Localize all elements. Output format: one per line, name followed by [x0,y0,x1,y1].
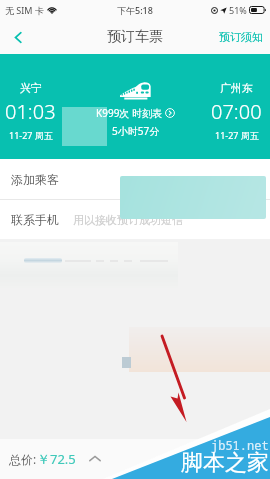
button[interactable]: 联系手机 [0,200,270,239]
button[interactable]: K999次 时刻表 [96,106,175,120]
staticText: 11-27 周五 [9,129,53,141]
button[interactable]: 添加乘客 [0,159,270,199]
staticText: jb51.net [211,437,269,453]
staticText: ￥72.5 [37,450,76,468]
staticText: 兴宁 [20,81,42,95]
staticText: 5小时57分 [112,124,160,138]
staticText: 无 SIM 卡 [5,4,44,16]
staticText: 预订须知 [219,30,263,44]
button[interactable]: Back [0,20,36,54]
staticText: 联系手机 [11,212,59,227]
staticText: 总价: [9,451,37,467]
staticText: 广州东 [220,81,253,95]
staticText: K999次 时刻表 [96,106,162,120]
staticText: 11-27 周五 [215,129,259,141]
staticText: 下午5:18 [117,4,153,16]
button[interactable]: 预订须知 [212,20,270,54]
staticText: 预订车票 [107,28,163,46]
staticText: 添加乘客 [11,172,59,187]
staticText: 01:03 [5,98,56,125]
staticText: 脚本之家 [181,449,269,477]
button[interactable]: 总价: [9,450,102,468]
staticText: 51% [229,4,247,16]
staticText: 07:00 [211,98,262,125]
staticText: 用以接收预订成功短信 [73,213,183,227]
